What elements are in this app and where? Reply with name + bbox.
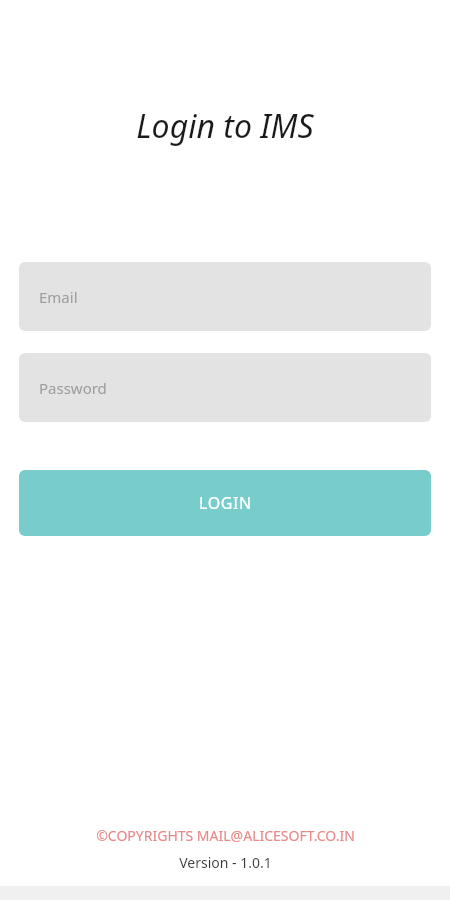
button[interactable]: LOGIN (19, 470, 431, 536)
staticText: Password (39, 378, 107, 398)
staticText: Email (39, 287, 78, 307)
button[interactable]: Email (19, 262, 431, 331)
staticText: Version - 1.0.1 (179, 853, 272, 872)
staticText: Login to IMS (136, 104, 314, 148)
staticText: ©COPYRIGHTS MAIL@ALICESOFT.CO.IN (96, 826, 355, 845)
button[interactable]: Password (19, 353, 431, 422)
staticText: LOGIN (199, 492, 252, 514)
